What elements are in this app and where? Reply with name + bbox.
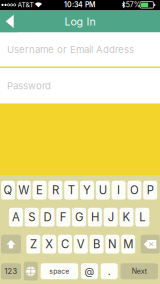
staticText: 57% <box>126 1 141 9</box>
staticText: Username or Email Address <box>7 44 134 55</box>
staticText: B <box>93 237 100 251</box>
staticText: A <box>12 210 20 224</box>
staticText: N <box>108 237 117 251</box>
button[interactable]: A <box>9 208 23 227</box>
button[interactable]: X <box>42 235 56 254</box>
staticText: C <box>61 237 69 251</box>
staticText: Q <box>3 183 12 197</box>
button[interactable]: Delete <box>141 235 160 254</box>
staticText: P <box>147 183 154 197</box>
staticText: Log In <box>64 15 95 28</box>
staticText: S <box>28 210 35 224</box>
button[interactable]: W <box>17 181 31 200</box>
staticText: W <box>18 183 29 197</box>
staticText: Password <box>7 80 51 91</box>
button[interactable]: E <box>33 181 47 200</box>
button[interactable]: S <box>25 208 39 227</box>
staticText: L <box>139 210 145 224</box>
button[interactable]: P <box>143 181 157 200</box>
staticText: J <box>108 210 114 224</box>
staticText: @ <box>84 265 94 277</box>
staticText: I <box>117 183 120 197</box>
button[interactable]: 123 <box>1 263 21 279</box>
staticText: U <box>99 183 107 197</box>
button[interactable]: K <box>119 208 133 227</box>
button[interactable]: H <box>88 208 102 227</box>
staticText: Y <box>83 183 91 197</box>
button[interactable]: D <box>40 208 54 227</box>
staticText: Next <box>132 267 147 275</box>
button[interactable]: V <box>74 235 88 254</box>
button[interactable]: U <box>96 181 110 200</box>
button[interactable]: Next keyboard <box>24 262 38 281</box>
staticText: R <box>52 183 59 197</box>
button[interactable]: L <box>135 208 149 227</box>
button[interactable]: C <box>58 235 72 254</box>
button[interactable]: F <box>56 208 70 227</box>
staticText: E <box>36 183 43 197</box>
staticText: G <box>75 210 83 224</box>
button[interactable]: I <box>112 181 126 200</box>
button[interactable]: G <box>72 208 86 227</box>
staticText: D <box>43 210 51 224</box>
staticText: H <box>91 210 99 224</box>
staticText: AT&T <box>17 1 33 9</box>
button[interactable]: N <box>105 235 119 254</box>
button[interactable]: Shift <box>1 235 21 254</box>
button[interactable]: Q <box>1 181 15 200</box>
button[interactable]: B <box>90 235 104 254</box>
staticText: . <box>108 265 111 277</box>
staticText: 10:34 PM <box>64 0 95 9</box>
staticText: F <box>60 210 67 224</box>
button[interactable]: M <box>121 235 135 254</box>
staticText: M <box>123 237 133 251</box>
button[interactable]: Y <box>80 181 94 200</box>
button[interactable]: Back <box>0 10 18 32</box>
staticText: T <box>68 183 75 197</box>
button[interactable]: J <box>104 208 118 227</box>
staticText: 123 <box>4 267 17 276</box>
staticText: V <box>77 237 85 251</box>
button[interactable]: R <box>48 181 62 200</box>
button[interactable]: space <box>41 263 78 279</box>
button[interactable]: Username or Email Address <box>0 32 160 66</box>
button[interactable]: T <box>64 181 78 200</box>
button[interactable]: @ <box>81 263 98 279</box>
staticText: K <box>122 210 130 224</box>
staticText: Z <box>30 237 37 251</box>
button[interactable]: O <box>127 181 141 200</box>
staticText: X <box>45 237 53 251</box>
button[interactable]: Next <box>120 263 158 279</box>
button[interactable]: Password <box>0 68 160 103</box>
button[interactable]: Z <box>26 235 40 254</box>
staticText: space <box>49 267 69 275</box>
button[interactable]: . <box>101 263 118 279</box>
staticText: O <box>130 183 139 197</box>
